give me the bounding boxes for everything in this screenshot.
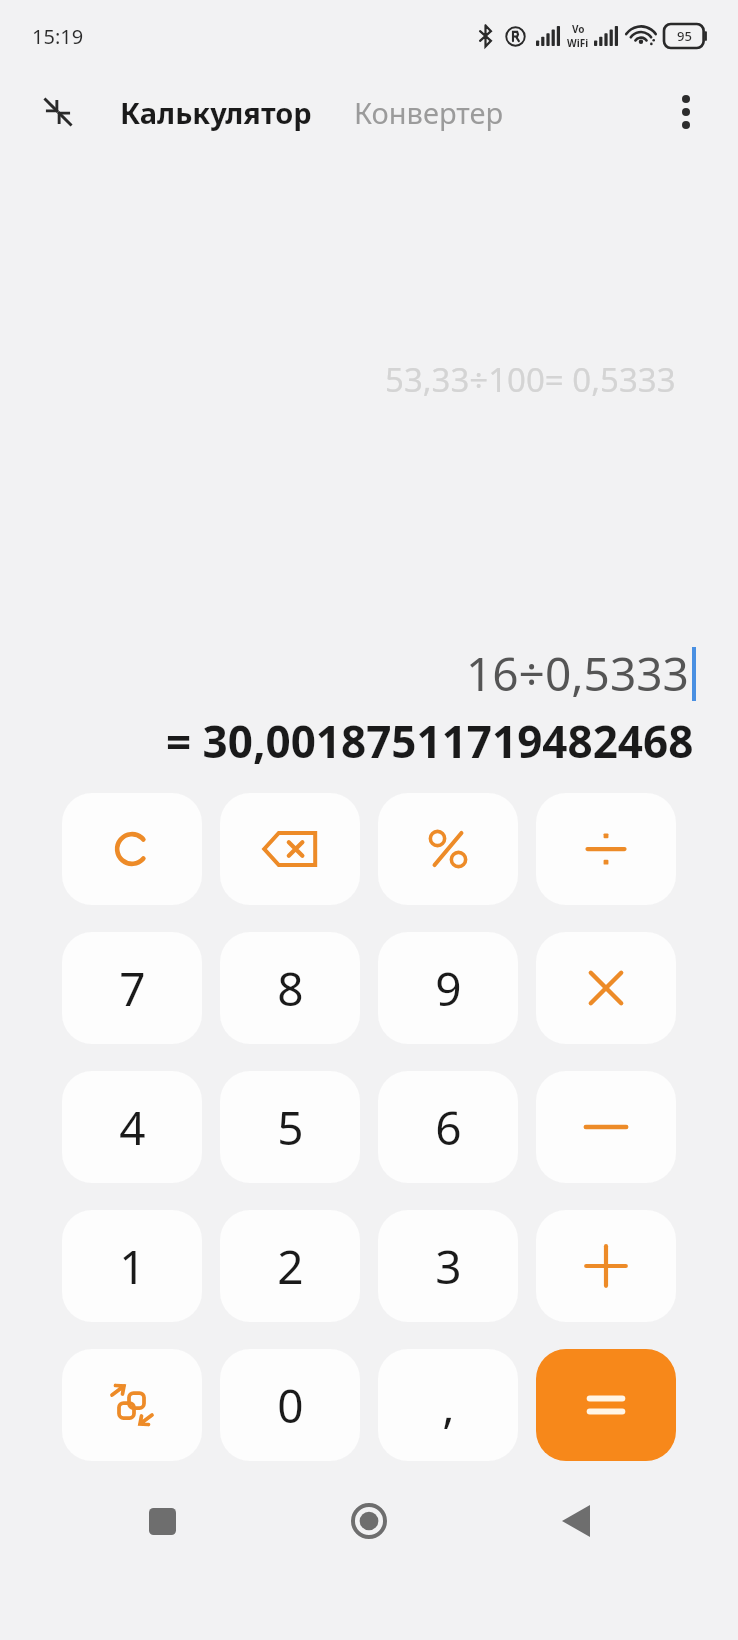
button[interactable]: Home [324,1491,414,1551]
button[interactable]: More options [660,86,712,138]
staticText: 53,33÷100= 0,5333 [385,357,676,402]
button[interactable]: 5 [220,1071,360,1183]
staticText: = 30,00187511719482468 [166,711,694,771]
button[interactable]: 9 [378,932,518,1044]
button[interactable] [536,932,676,1044]
staticText: 4 [119,1096,146,1159]
button[interactable]: Back [531,1491,621,1551]
button[interactable]: 7 [62,932,202,1044]
staticText: 1 [119,1235,146,1298]
button[interactable] [536,1210,676,1322]
button[interactable]: 8 [220,932,360,1044]
button[interactable] [536,793,676,905]
button[interactable]: , [378,1349,518,1461]
staticText: 2 [277,1235,304,1298]
button[interactable]: Recent apps [117,1491,207,1551]
staticText: , [442,1374,455,1437]
button[interactable]: 6 [378,1071,518,1183]
button[interactable]: 2 [220,1210,360,1322]
button[interactable] [62,793,202,905]
staticText: 15:19 [32,23,84,50]
button[interactable]: Equals [536,1349,676,1461]
button[interactable]: Конвертер [346,85,512,140]
staticText: Конвертер [354,93,504,132]
button[interactable] [536,1071,676,1183]
staticText: Калькулятор [120,93,312,132]
button[interactable]: Collapse [34,88,82,136]
staticText: 0 [277,1374,304,1437]
staticText: 8 [277,957,304,1020]
staticText: 6 [435,1096,462,1159]
staticText: 5 [277,1096,304,1159]
staticText: Vo [572,22,585,36]
button[interactable]: Калькулятор [112,85,320,140]
staticText: 95 [677,27,692,45]
button[interactable] [220,793,360,905]
button[interactable]: 3 [378,1210,518,1322]
button[interactable]: Convert units [62,1349,202,1461]
staticText: 9 [435,957,462,1020]
button[interactable]: 0 [220,1349,360,1461]
button[interactable]: 1 [62,1210,202,1322]
staticText: WiFi [567,36,589,50]
staticText: 7 [119,957,146,1020]
button[interactable] [378,793,518,905]
button[interactable]: 4 [62,1071,202,1183]
staticText: 16÷0,5333 [466,642,689,705]
staticText: 3 [435,1235,462,1298]
